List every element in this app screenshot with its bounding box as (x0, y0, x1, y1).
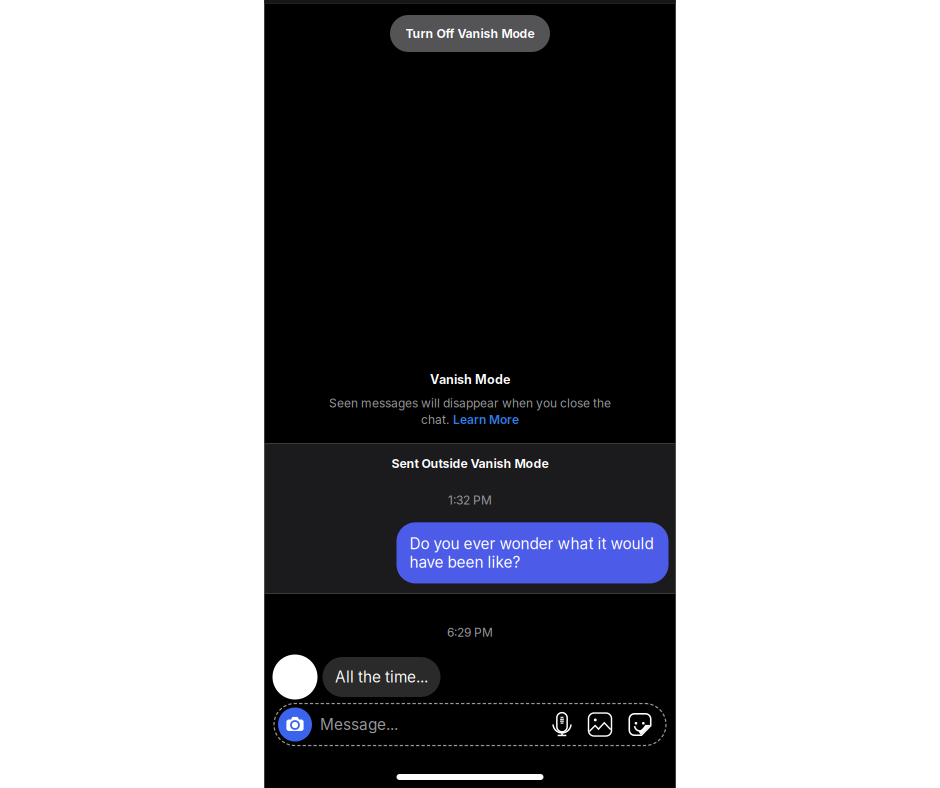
staticText: Message... (320, 715, 398, 734)
button[interactable]: Camera (278, 707, 312, 741)
staticText: 6:29 PM (447, 625, 493, 639)
staticText: Do you ever wonder what it would have be… (409, 534, 653, 571)
button[interactable]: Learn More (453, 412, 519, 427)
button[interactable]: Choose photo (588, 712, 612, 736)
staticText: 1:32 PM (448, 493, 492, 507)
button[interactable]: Stickers (628, 712, 652, 736)
button[interactable]: Turn Off Vanish Mode (390, 15, 550, 52)
staticText: Sent Outside Vanish Mode (391, 456, 548, 471)
staticText: chat. (421, 412, 449, 427)
button[interactable]: Record voice message (550, 712, 574, 736)
staticText: All the time... (335, 668, 428, 686)
staticText: Vanish Mode (430, 372, 510, 387)
staticText: Turn Off Vanish Mode (405, 26, 534, 41)
button[interactable]: Message... (312, 703, 522, 745)
staticText: Seen messages will disappear when you cl… (329, 396, 611, 410)
staticText: Learn More (453, 412, 519, 427)
